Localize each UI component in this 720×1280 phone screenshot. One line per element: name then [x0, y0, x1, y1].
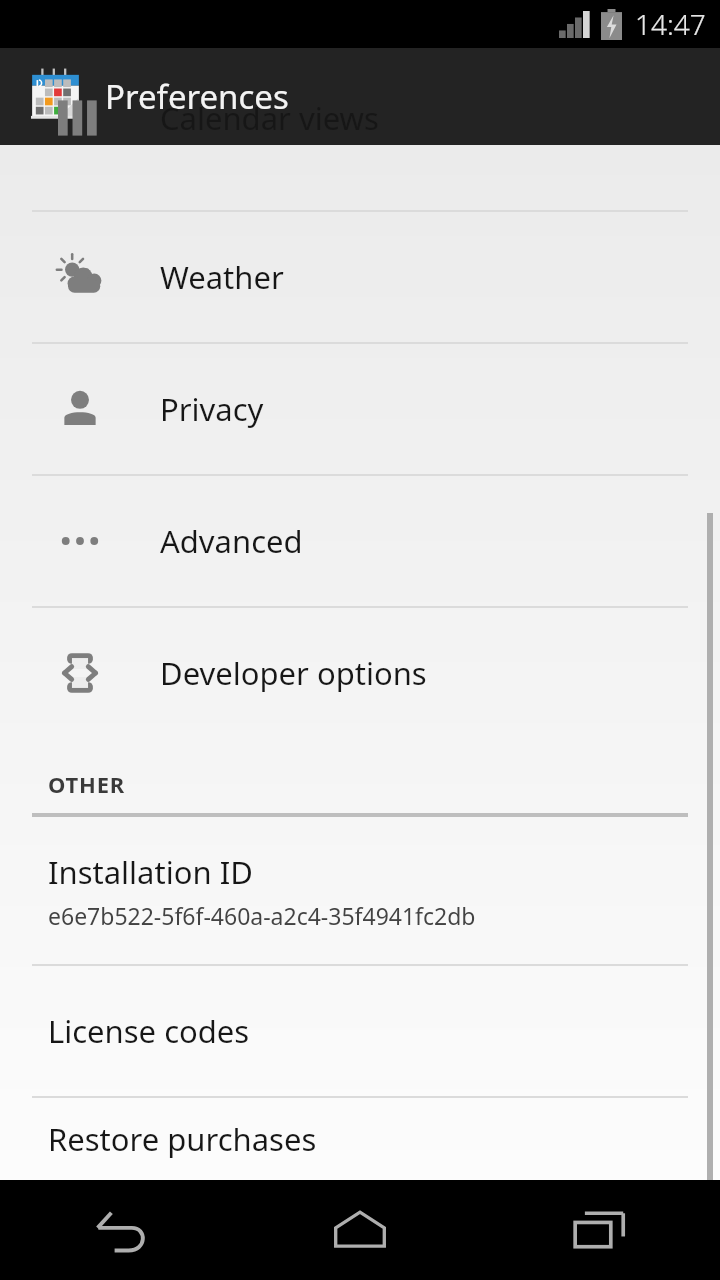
staticText: Installation ID — [48, 851, 253, 893]
staticText: Preferences — [105, 74, 289, 119]
button[interactable]: Recent apps — [480, 1180, 720, 1280]
button[interactable]: Developer options — [0, 608, 720, 738]
staticText: Privacy — [160, 388, 264, 430]
button[interactable]: Advanced — [0, 476, 720, 606]
button[interactable]: Privacy — [0, 344, 720, 474]
button[interactable]: Weather — [0, 212, 720, 342]
button[interactable]: Restore purchases — [0, 1098, 720, 1180]
staticText: OTHER — [48, 769, 126, 799]
staticText: Weather — [160, 256, 284, 298]
staticText: Calendar views — [160, 97, 379, 139]
button[interactable]: Home — [240, 1180, 480, 1280]
button[interactable]: Installation ID — [0, 817, 720, 964]
staticText: 14:47 — [635, 5, 706, 43]
staticText: Restore purchases — [48, 1118, 317, 1160]
button[interactable]: Preferences — [0, 48, 720, 145]
button[interactable]: License codes — [0, 966, 720, 1096]
staticText: e6e7b522-5f6f-460a-a2c4-35f4941fc2db — [48, 900, 476, 931]
staticText: Developer options — [160, 652, 427, 694]
staticText: Advanced — [160, 520, 303, 562]
button[interactable]: Back — [0, 1180, 240, 1280]
staticText: License codes — [48, 1010, 250, 1052]
